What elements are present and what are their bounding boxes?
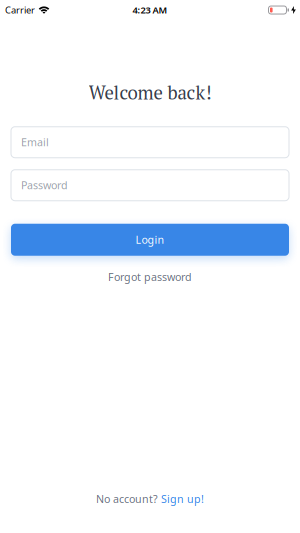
staticText: Sign up! (161, 492, 204, 506)
staticText: 4:23 AM (132, 4, 167, 16)
staticText: Welcome back! (88, 80, 211, 105)
staticText: Forgot password (108, 270, 192, 284)
button[interactable]: Email (11, 127, 289, 158)
staticText: No account? (96, 492, 158, 506)
button[interactable]: Forgot password (108, 256, 192, 284)
button[interactable]: Password (11, 170, 289, 201)
button[interactable]: Sign up! (161, 492, 204, 506)
button[interactable]: Login (11, 224, 289, 256)
staticText: Password (21, 178, 68, 192)
staticText: Carrier (5, 4, 35, 16)
staticText: Email (21, 135, 49, 149)
staticText: Login (135, 233, 164, 247)
